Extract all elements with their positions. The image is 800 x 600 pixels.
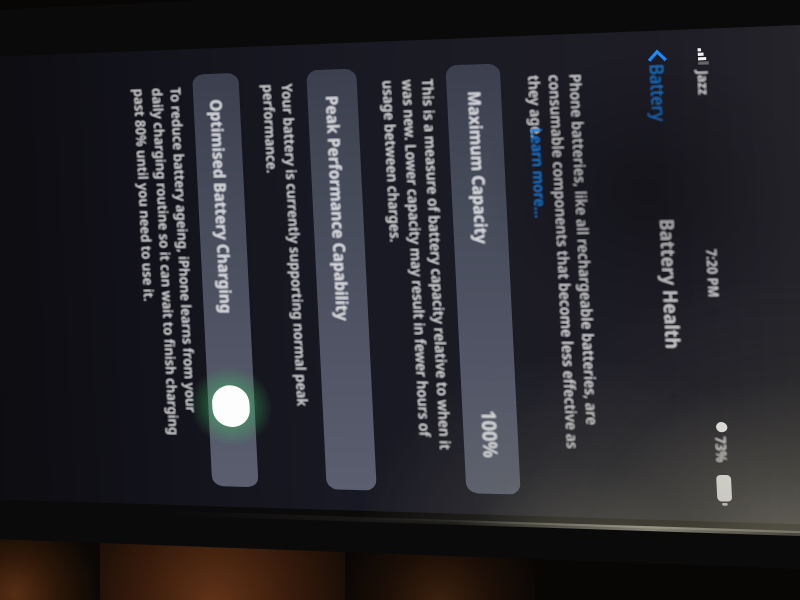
- button[interactable]: Photo of an iPhone showing the Battery H…: [0, 0, 800, 600]
